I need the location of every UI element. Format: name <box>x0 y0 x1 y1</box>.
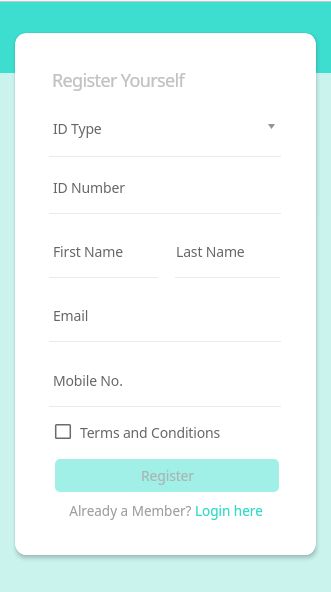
button[interactable] <box>54 420 222 443</box>
button[interactable] <box>175 234 280 279</box>
button[interactable] <box>49 234 158 279</box>
staticText: Register Yourself <box>52 68 185 93</box>
button[interactable] <box>49 170 281 215</box>
staticText: Register <box>141 466 194 485</box>
button[interactable]: Already a Member? Login here <box>66 501 266 521</box>
staticText: Last Name <box>176 242 245 261</box>
staticText: Mobile No. <box>53 371 123 390</box>
staticText: ID Type <box>53 119 102 138</box>
staticText: Terms and Conditions <box>80 423 220 442</box>
staticText: Email <box>53 306 89 325</box>
button[interactable] <box>49 363 281 408</box>
staticText: First Name <box>53 242 123 261</box>
button[interactable]: Register <box>55 459 279 492</box>
staticText: ID Number <box>53 178 125 197</box>
button[interactable] <box>49 299 281 344</box>
staticText: Already a Member? Login here <box>69 502 263 520</box>
button[interactable]: ID Type, select <box>49 112 281 156</box>
